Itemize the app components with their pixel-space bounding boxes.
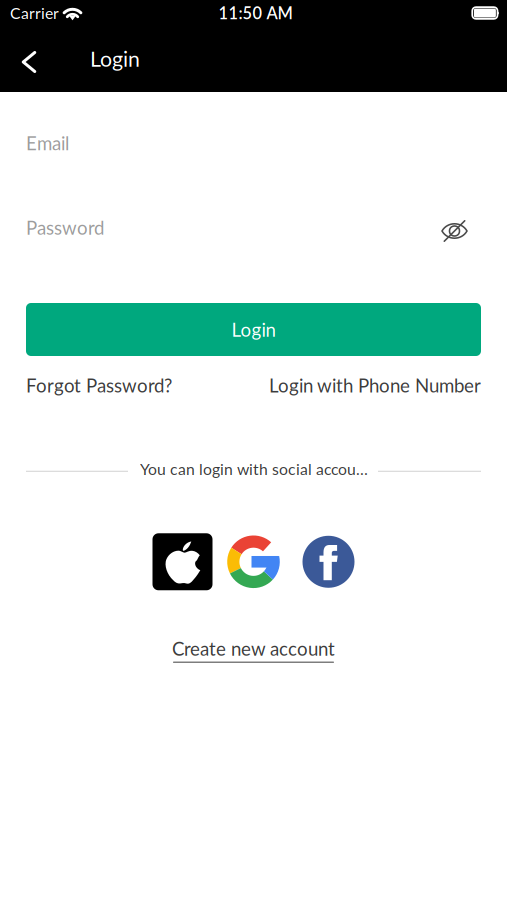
button[interactable]: Login [26, 303, 481, 356]
staticText: Forgot Password? [26, 374, 172, 396]
button[interactable]: Forgot Password? [26, 374, 172, 396]
staticText: Carrier [10, 4, 59, 22]
staticText: Login [90, 46, 140, 71]
button[interactable]: Create new account [172, 637, 335, 663]
staticText: Password [26, 216, 104, 239]
staticText: Email [26, 132, 69, 154]
button[interactable]: Email [26, 121, 481, 165]
staticText: Login [231, 318, 275, 341]
button[interactable]: Back [0, 34, 51, 90]
staticText: Login with Phone Number [269, 374, 481, 396]
button[interactable]: Password [26, 209, 481, 253]
staticText: Create new account [172, 637, 335, 660]
button[interactable]: Sign in with Apple [152, 533, 212, 590]
button[interactable]: Sign in with Facebook [280, 536, 354, 588]
button[interactable]: Sign in with Google [212, 535, 280, 589]
staticText: You can login with social account. [140, 459, 373, 478]
staticText: 11:50 AM [218, 3, 292, 23]
button[interactable]: Login with Phone Number [269, 374, 481, 396]
